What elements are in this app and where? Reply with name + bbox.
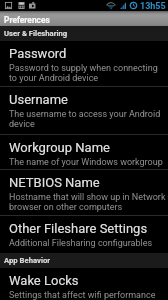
other: Gallery notification [5, 2, 12, 9]
staticText: User & Filesharing [4, 29, 68, 38]
button[interactable]: Username [0, 87, 168, 135]
staticText: Settings that affect wifi performance [9, 290, 156, 300]
staticText: Additional Filesharing configurables [9, 238, 153, 249]
staticText: NETBIOS Name [9, 175, 100, 190]
staticText: Workgroup Name [9, 140, 110, 155]
staticText: Other Fileshare Settings [9, 221, 148, 236]
button[interactable]: Workgroup Name [0, 135, 168, 170]
other: Calculator notification [18, 2, 25, 9]
staticText: The name of your Windows workgroup [9, 157, 163, 168]
staticText: Username [9, 92, 68, 107]
button[interactable]: Wake Locks [0, 268, 168, 300]
staticText: Hostname that will show up in Network br… [9, 192, 166, 212]
staticText: Password [9, 46, 67, 61]
other: Camera notification [29, 2, 36, 9]
button[interactable]: Preferences [0, 11, 168, 26]
staticText: App Behavior [4, 256, 51, 265]
button[interactable]: Other Fileshare Settings [0, 216, 168, 253]
staticText: Preferences [4, 15, 50, 25]
staticText: 13h55 [140, 1, 166, 12]
staticText: Password to supply when connecting to yo… [9, 63, 166, 83]
button[interactable]: NETBIOS Name [0, 170, 168, 216]
staticText: Wake Locks [9, 273, 79, 288]
button[interactable]: Password [0, 41, 168, 87]
staticText: The username to access your Android devi… [9, 109, 166, 129]
